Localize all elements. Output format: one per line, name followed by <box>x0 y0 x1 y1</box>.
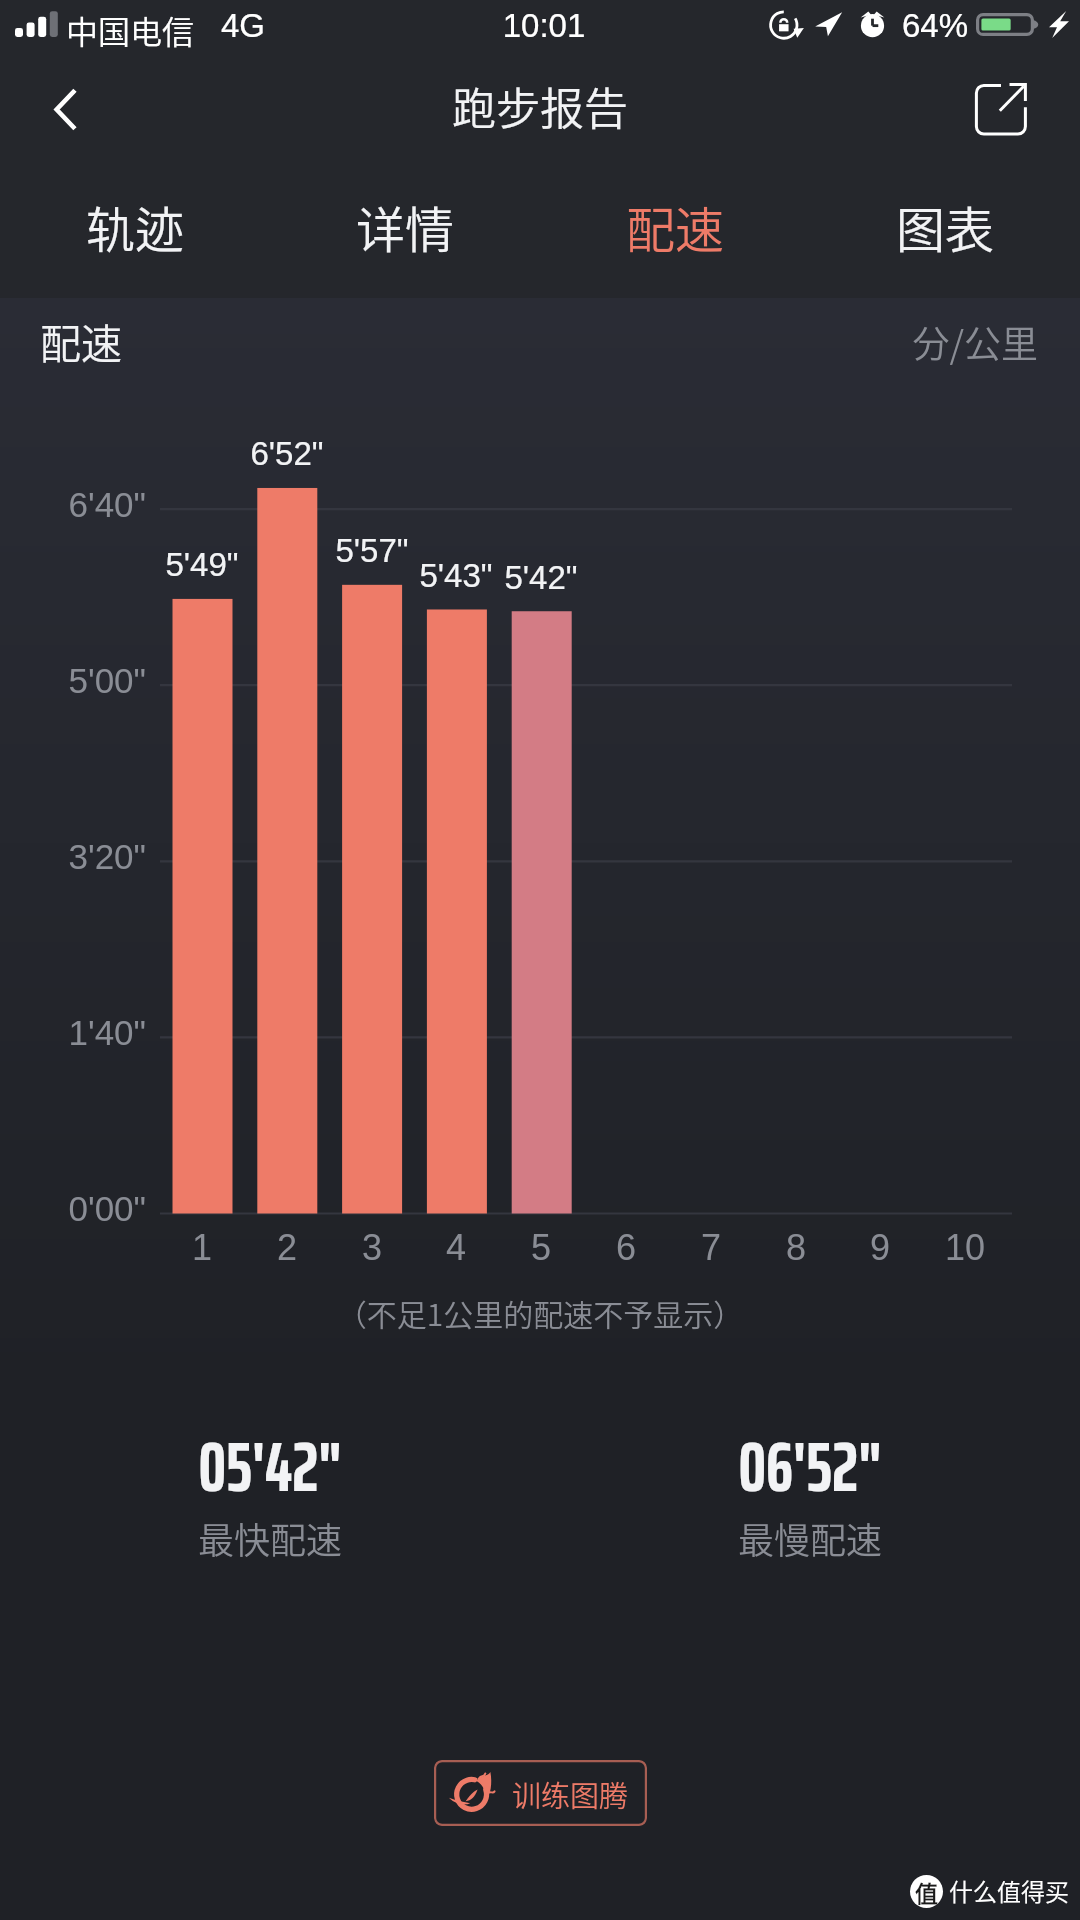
staticText: 6'52" <box>207 435 367 479</box>
button[interactable]: 训练图腾 <box>434 1760 647 1826</box>
staticText: 分/公里 <box>740 315 1038 369</box>
staticText: 训练图腾 <box>512 1773 629 1815</box>
staticText: 7 <box>661 1227 761 1277</box>
staticText: 最快配速 <box>70 1512 470 1568</box>
staticText: 图表 <box>896 191 995 262</box>
staticText: 2 <box>237 1227 337 1277</box>
staticText: 5'43" <box>376 557 536 601</box>
staticText: 6'40" <box>0 485 146 533</box>
staticText: 3'20" <box>0 837 146 885</box>
staticText: 0'00" <box>0 1189 146 1237</box>
staticText: 轨迹 <box>86 191 185 262</box>
staticText: 3 <box>322 1227 422 1277</box>
staticText: 8 <box>746 1227 846 1277</box>
staticText: 跑步报告 <box>340 74 740 132</box>
button[interactable] <box>610 1408 1010 1576</box>
staticText: 4G <box>221 7 266 44</box>
button[interactable]: Back <box>19 62 111 156</box>
staticText: 5'00" <box>0 661 146 709</box>
staticText: 中国电信 <box>66 7 195 53</box>
staticText: 什么值得买 <box>949 1873 1069 1908</box>
staticText: 64% <box>902 7 969 44</box>
staticText: （不足1公里的配速不予显示） <box>140 1291 940 1343</box>
staticText: 值 <box>910 1875 943 1908</box>
staticText: 10 <box>915 1227 1015 1277</box>
staticText: 9 <box>830 1227 930 1277</box>
staticText: 5'57" <box>292 532 452 576</box>
button[interactable]: Share <box>952 61 1048 157</box>
staticText: 详情 <box>356 191 455 262</box>
button[interactable]: 图表 <box>810 162 1080 290</box>
staticText: 最慢配速 <box>610 1512 1010 1568</box>
staticText: 4 <box>406 1227 506 1277</box>
staticText: 06'52" <box>610 1413 1010 1497</box>
staticText: 配速 <box>40 311 122 369</box>
staticText: 配速 <box>626 191 725 262</box>
button[interactable]: 详情 <box>270 162 540 290</box>
staticText: 10:01 <box>444 7 644 55</box>
staticText: 1 <box>152 1227 252 1277</box>
staticText: 6 <box>576 1227 676 1277</box>
button[interactable]: 配速 <box>540 162 810 290</box>
staticText: 05'42" <box>70 1413 470 1497</box>
staticText: 5'49" <box>122 546 282 590</box>
staticText: 5'42" <box>461 559 621 603</box>
staticText: 1'40" <box>0 1013 146 1061</box>
staticText: 5 <box>491 1227 591 1277</box>
button[interactable]: 轨迹 <box>0 162 270 290</box>
button[interactable] <box>70 1408 470 1576</box>
